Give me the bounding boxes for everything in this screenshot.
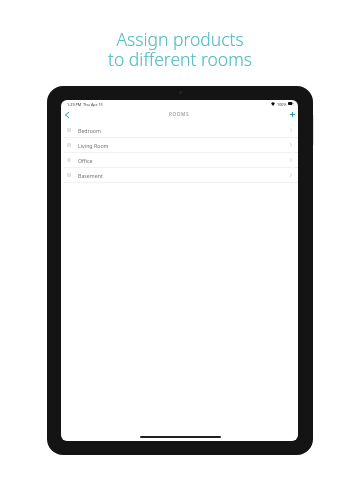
- button[interactable]: Back: [61, 109, 73, 121]
- staticText: Thu Apr 15: [83, 102, 103, 107]
- staticText: Living Room: [78, 142, 109, 149]
- button[interactable]: Add room: [286, 108, 298, 120]
- staticText: Basement: [78, 172, 103, 179]
- staticText: ROOMS: [169, 111, 190, 117]
- staticText: Office: [78, 157, 93, 164]
- staticText: Bedroom: [78, 127, 101, 134]
- button[interactable]: Basement: [61, 168, 298, 183]
- staticText: Assign products to different rooms: [0, 27, 360, 72]
- staticText: 1:29 PM: [67, 102, 82, 107]
- staticText: 100%: [277, 102, 287, 107]
- button[interactable]: Bedroom: [61, 123, 298, 138]
- button[interactable]: Living Room: [61, 138, 298, 153]
- button[interactable]: Office: [61, 153, 298, 168]
